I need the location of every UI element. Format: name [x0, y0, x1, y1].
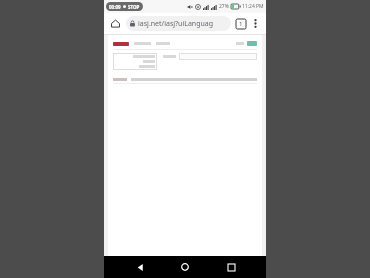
button[interactable]: 00:09	[106, 2, 143, 11]
button[interactable]: iasj.net/iasj?uiLanguag	[126, 16, 231, 31]
staticText: 1	[239, 20, 243, 28]
button[interactable]: Search	[247, 41, 257, 46]
button[interactable]: Tabs	[234, 17, 248, 31]
button[interactable]: Recents	[221, 257, 241, 277]
staticText: 11:24 PM	[242, 3, 264, 10]
button[interactable]: Active tab	[113, 42, 129, 46]
button[interactable]: Home	[108, 16, 123, 31]
staticText: 27%	[219, 3, 229, 10]
button[interactable]: Back	[130, 257, 150, 277]
staticText: STOP	[128, 4, 140, 10]
button[interactable]: Search field	[179, 53, 257, 60]
staticText: iasj.net/iasj?uiLanguag	[138, 19, 214, 29]
button[interactable]: More options	[249, 17, 262, 30]
button[interactable]: Home	[175, 257, 195, 277]
staticText: 00:09	[109, 4, 121, 10]
